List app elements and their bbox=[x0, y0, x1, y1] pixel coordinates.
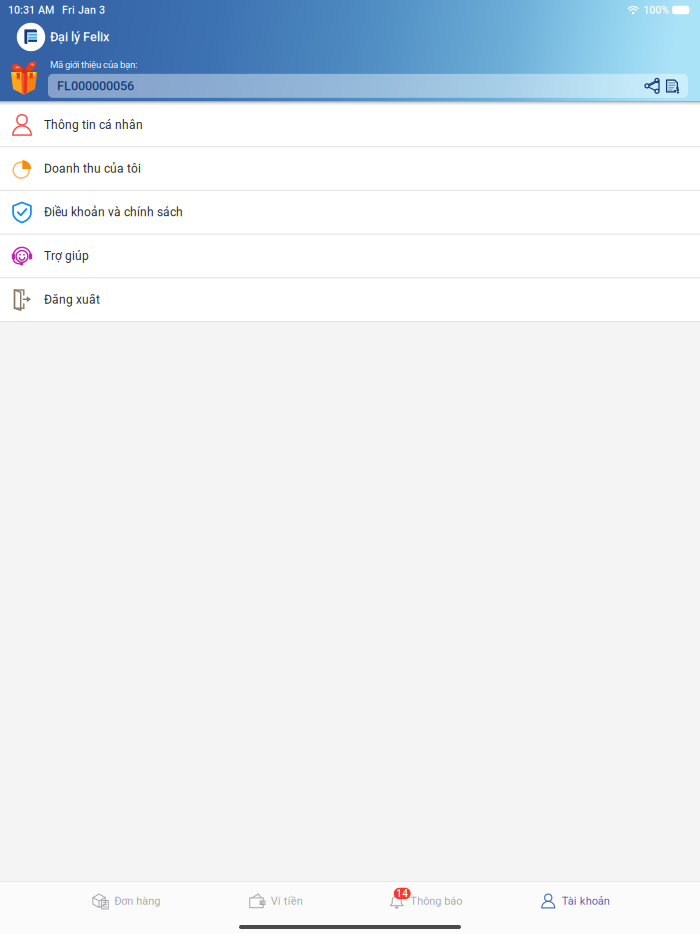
staticText: Điều khoản và chính sách bbox=[44, 205, 183, 219]
staticText: Đăng xuất bbox=[44, 293, 100, 307]
button[interactable]: Thông tin cá nhân bbox=[0, 103, 700, 146]
staticText: Thông báo bbox=[410, 895, 462, 907]
staticText: Thông tin cá nhân bbox=[44, 118, 143, 132]
button[interactable]: 14 bbox=[350, 882, 499, 920]
button[interactable]: Doanh thu của tôi bbox=[0, 147, 700, 190]
staticText: 10:31 AM bbox=[8, 4, 54, 16]
staticText: Tài khoản bbox=[562, 895, 610, 907]
button[interactable]: Chia sẻ bbox=[642, 75, 662, 97]
staticText: Trợ giúp bbox=[44, 249, 89, 263]
button[interactable]: Tài khoản bbox=[499, 882, 649, 920]
staticText: Mã giới thiệu của bạn: bbox=[50, 59, 137, 70]
button[interactable]: Đơn hàng bbox=[51, 882, 200, 920]
button[interactable]: Trợ giúp bbox=[0, 235, 700, 277]
staticText: FL000000056 bbox=[57, 78, 134, 93]
staticText: Đơn hàng bbox=[114, 895, 160, 907]
button[interactable]: Điều khoản và chính sách bbox=[0, 191, 700, 234]
staticText: Ví tiền bbox=[271, 895, 303, 907]
button[interactable]: Sao chép bbox=[662, 75, 688, 97]
staticText: Fri Jan 3 bbox=[62, 4, 105, 16]
button[interactable]: Ví tiền bbox=[200, 882, 350, 920]
staticText: Doanh thu của tôi bbox=[44, 161, 141, 176]
staticText: Đại lý Felix bbox=[50, 30, 109, 44]
staticText: 100% bbox=[643, 4, 669, 16]
button[interactable]: Đăng xuất bbox=[0, 278, 700, 321]
staticText: 14 bbox=[396, 888, 408, 899]
